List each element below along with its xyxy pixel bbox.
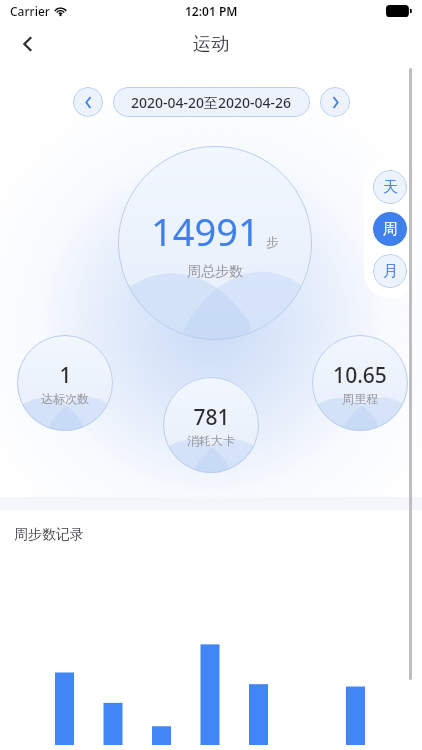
staticText: 步	[266, 234, 279, 250]
staticText: 14991	[151, 205, 260, 257]
staticText: 周里程	[342, 391, 378, 406]
staticText: 2020-04-20至2020-04-26	[131, 93, 292, 112]
staticText: 1	[59, 361, 72, 390]
staticText: 周	[383, 220, 398, 239]
staticText: 达标次数	[41, 391, 89, 406]
button[interactable]: 2020-04-20至2020-04-26	[113, 87, 310, 117]
staticText: 周步数记录	[14, 526, 84, 544]
staticText: Carrier	[10, 3, 50, 19]
staticText: 12:01 PM	[185, 3, 238, 19]
staticText: 周总步数	[187, 263, 243, 281]
button[interactable]: Next week	[320, 87, 350, 117]
staticText: 消耗大卡	[187, 433, 235, 448]
button[interactable]: 天	[373, 170, 407, 204]
staticText: 月	[383, 262, 398, 281]
staticText: 天	[383, 178, 398, 197]
button[interactable]: Back	[8, 24, 48, 64]
button[interactable]: 周	[373, 212, 407, 246]
staticText: 781	[193, 403, 230, 432]
button[interactable]: 月	[373, 254, 407, 288]
staticText: 运动	[193, 33, 229, 56]
staticText: 10.65	[333, 361, 387, 390]
button[interactable]: Previous week	[73, 87, 103, 117]
